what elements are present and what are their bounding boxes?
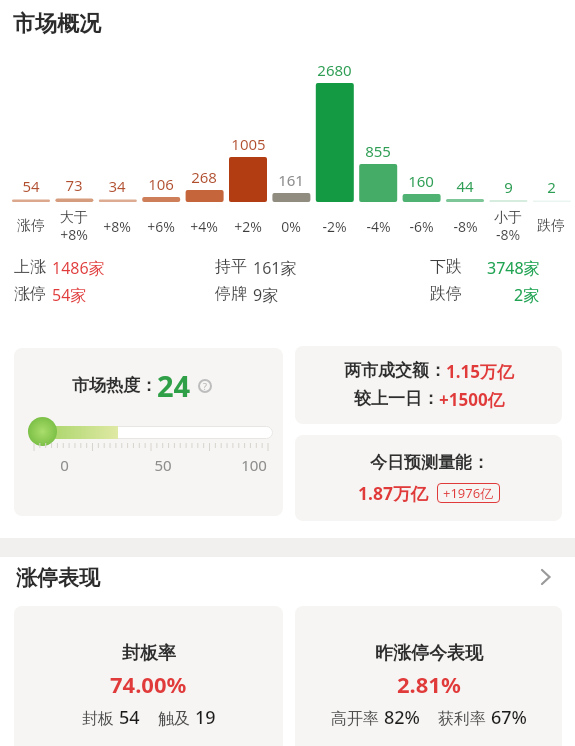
staticText: 67%	[491, 705, 527, 730]
staticText: 1486家	[52, 257, 105, 279]
button[interactable]: 封板率	[14, 606, 283, 746]
staticText: 161	[278, 170, 304, 190]
staticText: 1.15万亿	[446, 360, 514, 383]
staticText: +6%	[147, 217, 175, 236]
button[interactable]: 昨涨停今表现	[295, 606, 562, 746]
staticText: 下跌	[430, 257, 462, 277]
staticText: 封板	[82, 707, 119, 729]
staticText: 大于 +8%	[60, 209, 88, 244]
staticText: 涨停表现	[16, 565, 100, 591]
staticText: 市场热度：	[72, 375, 157, 396]
staticText: 封板率	[122, 642, 176, 665]
staticText: 0	[60, 455, 69, 475]
staticText: 较上一日：	[354, 388, 439, 409]
staticText: 停牌	[215, 284, 247, 304]
staticText: 855	[365, 141, 391, 161]
staticText: -2%	[322, 217, 347, 236]
staticText: 触及	[158, 707, 195, 729]
staticText: 小于 -8%	[494, 209, 522, 244]
staticText: 两市成交额：	[344, 360, 446, 381]
staticText: 2	[547, 177, 556, 197]
staticText: +8%	[103, 217, 131, 236]
staticText: 2680	[317, 60, 352, 80]
staticText: 3748家	[487, 257, 540, 279]
staticText: 跌停	[430, 284, 462, 304]
button[interactable]	[14, 348, 283, 516]
staticText: 73	[65, 175, 83, 195]
staticText: 34	[108, 176, 126, 196]
staticText: 今日预测量能：	[370, 452, 489, 473]
staticText: 跌停	[537, 217, 565, 235]
staticText: +2%	[234, 217, 262, 236]
staticText: 2.81%	[397, 669, 461, 699]
staticText: ?	[203, 380, 207, 392]
staticText: 24	[157, 366, 191, 405]
staticText: 160	[408, 171, 434, 191]
staticText: 上涨	[14, 257, 46, 277]
staticText: 44	[456, 176, 474, 196]
staticText: 涨停	[14, 284, 46, 304]
staticText: 50	[154, 455, 172, 475]
staticText: 54家	[52, 284, 87, 306]
staticText: 1.87万亿	[358, 481, 428, 505]
button[interactable]: 涨停表现	[0, 559, 575, 599]
staticText: 82%	[384, 705, 420, 730]
staticText: +4%	[190, 217, 218, 236]
button[interactable]: 今日预测量能：	[295, 435, 562, 521]
staticText: 1005	[231, 134, 266, 154]
staticText: 市场概况	[13, 10, 101, 38]
staticText: -8%	[453, 217, 478, 236]
button[interactable]: 两市成交额：	[295, 346, 562, 424]
staticText: -4%	[366, 217, 391, 236]
staticText: 昨涨停今表现	[375, 642, 483, 665]
staticText: 54	[119, 705, 140, 730]
staticText: 持平	[215, 257, 247, 277]
staticText: 涨停	[17, 217, 45, 235]
staticText: +1976亿	[443, 484, 494, 502]
staticText: 268	[191, 167, 217, 187]
staticText: -6%	[409, 217, 434, 236]
staticText: 0%	[281, 217, 301, 236]
staticText: 9	[504, 177, 513, 197]
staticText: 获利率	[438, 707, 491, 729]
staticText: 100	[241, 455, 267, 475]
staticText: 9家	[253, 284, 279, 306]
staticText: +1500亿	[439, 388, 505, 411]
staticText: 2家	[514, 284, 540, 306]
staticText: 高开率	[331, 707, 384, 729]
staticText: 19	[195, 705, 216, 730]
staticText: 54	[22, 176, 40, 196]
staticText: 74.00%	[110, 669, 187, 699]
staticText: 106	[148, 174, 174, 194]
staticText: 161家	[253, 257, 297, 279]
